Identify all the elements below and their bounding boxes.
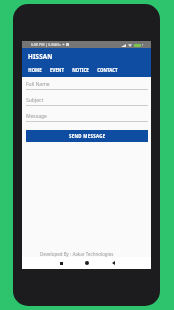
button[interactable]: NOTICE	[68, 64, 93, 77]
button[interactable]: Subject	[26, 97, 148, 106]
button[interactable]: Back	[107, 257, 119, 269]
staticText: Full Name	[26, 81, 50, 88]
button[interactable]: Home	[81, 257, 93, 269]
button[interactable]: EVENT	[46, 64, 68, 77]
staticText: r	[142, 43, 144, 47]
button[interactable]: Full Name	[26, 81, 148, 90]
staticText: Message	[26, 113, 47, 120]
staticText: HISSAN	[28, 52, 53, 60]
button[interactable]: HOME	[24, 64, 46, 77]
staticText: CONTACT	[97, 67, 118, 73]
staticText: HOME	[28, 67, 42, 73]
button[interactable]: SEND MESSAGE	[26, 130, 148, 142]
staticText: SEND MESSAGE	[69, 133, 106, 139]
button[interactable]: Message	[26, 113, 148, 122]
staticText: NOTICE	[72, 67, 89, 73]
staticText: EVENT	[50, 67, 64, 73]
button[interactable]: CONTACT	[93, 64, 122, 77]
staticText: 6:08 PM | 6.9kB/s	[31, 42, 61, 47]
staticText: Subject	[26, 97, 44, 104]
button[interactable]: Recent apps	[55, 257, 67, 269]
staticText: Developed By : Aakar Technologies	[40, 251, 114, 257]
